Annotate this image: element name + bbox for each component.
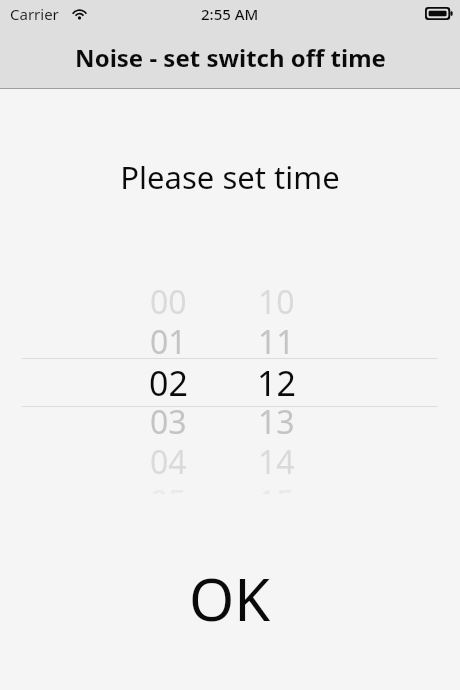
staticText: 13 [258, 400, 295, 444]
staticText: 01 [150, 320, 187, 364]
staticText: 00 [150, 284, 187, 324]
staticText: 2:55 AM [201, 4, 259, 24]
staticText: 12 [257, 360, 296, 404]
staticText: 04 [150, 440, 187, 484]
staticText: Please set time [0, 156, 460, 198]
staticText: 05 [150, 480, 187, 494]
button[interactable]: OK [145, 551, 315, 646]
staticText: Carrier [10, 4, 59, 24]
staticText: 02 [149, 360, 188, 404]
button[interactable]: Minutes [222, 284, 330, 494]
staticText: 14 [258, 440, 295, 484]
staticText: 11 [258, 320, 295, 364]
button[interactable]: Hours [114, 284, 222, 494]
staticText: 15 [258, 480, 295, 494]
staticText: Noise - set switch off time [75, 41, 386, 74]
staticText: 03 [150, 400, 187, 444]
staticText: 10 [258, 284, 295, 324]
staticText: OK [189, 559, 271, 638]
